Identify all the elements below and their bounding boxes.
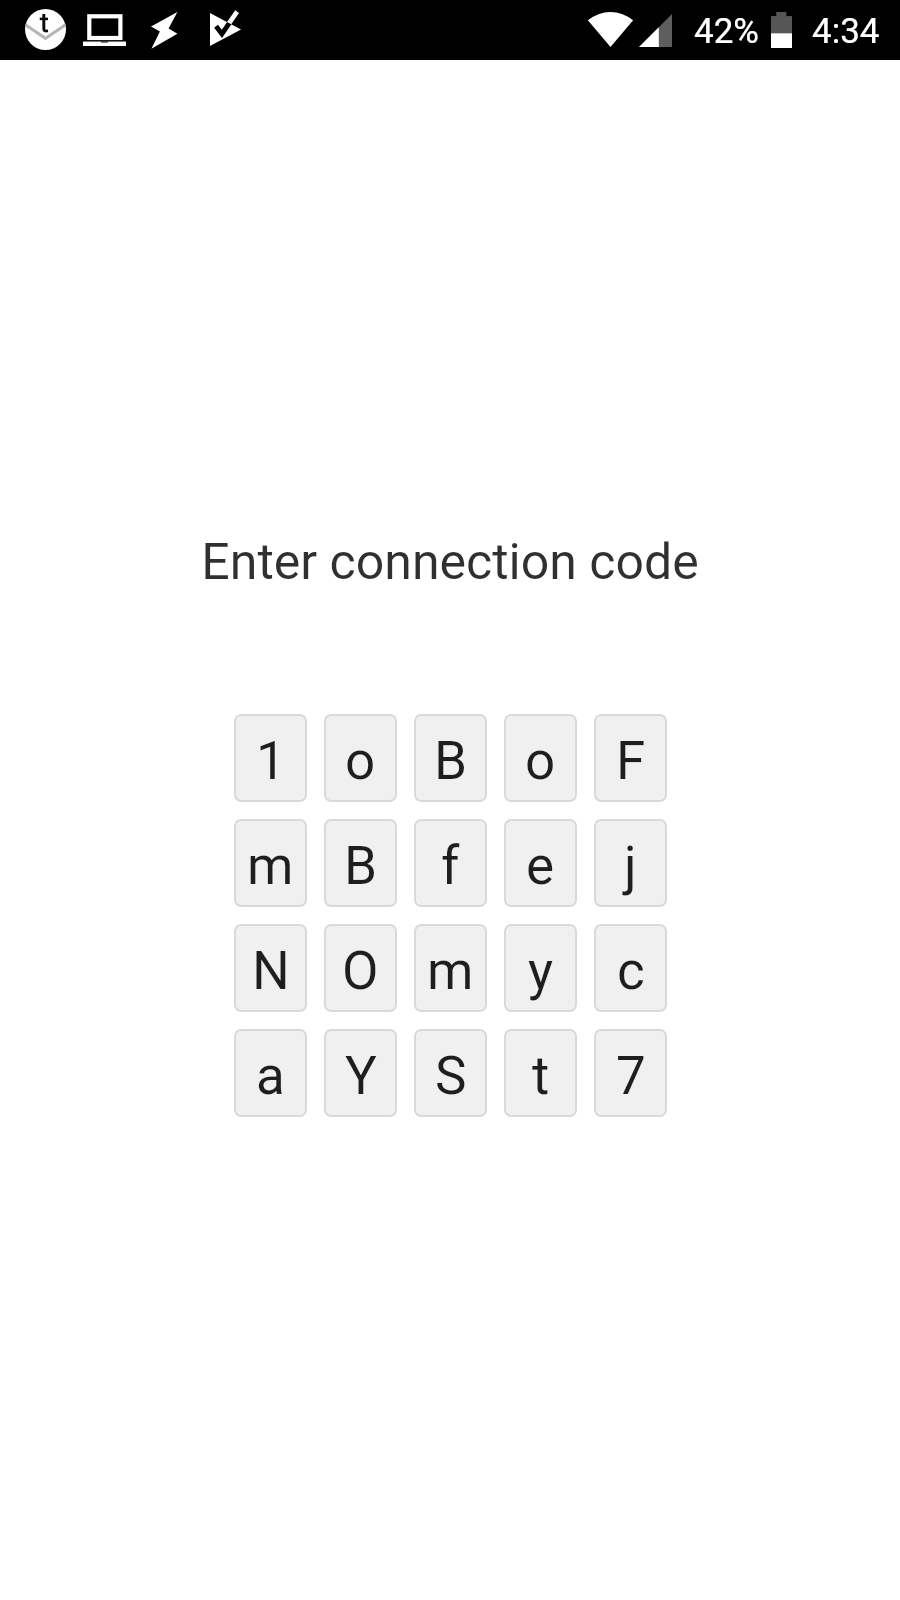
other: Play Store update <box>210 13 241 46</box>
other: Mobile signal <box>639 14 672 47</box>
staticText: e <box>526 835 555 897</box>
staticText: a <box>256 1045 285 1107</box>
button[interactable]: j <box>594 819 667 907</box>
button[interactable]: o <box>324 714 397 802</box>
button[interactable]: N <box>234 924 307 1012</box>
staticText: Y <box>345 1045 377 1107</box>
staticText: t <box>532 1045 550 1107</box>
staticText: j <box>624 835 637 897</box>
button[interactable]: S <box>414 1029 487 1117</box>
staticText: 7 <box>616 1045 646 1107</box>
other: Charging <box>150 11 178 50</box>
staticText: 1 <box>256 730 286 792</box>
button[interactable]: Y <box>324 1029 397 1117</box>
button[interactable]: 1 <box>234 714 307 802</box>
staticText: B <box>434 730 468 792</box>
button[interactable]: t <box>504 1029 577 1117</box>
button[interactable]: m <box>414 924 487 1012</box>
button[interactable]: B <box>414 714 487 802</box>
staticText: Enter connection code <box>201 533 699 592</box>
staticText: N <box>252 940 290 1002</box>
other: Cast to computer <box>83 14 126 46</box>
button[interactable]: a <box>234 1029 307 1117</box>
button[interactable]: O <box>324 924 397 1012</box>
button[interactable]: e <box>504 819 577 907</box>
staticText: o <box>525 730 556 792</box>
staticText: o <box>345 730 376 792</box>
staticText: 42% <box>694 11 759 52</box>
staticText: m <box>427 940 474 1002</box>
staticText: m <box>247 835 294 897</box>
staticText: F <box>616 730 646 792</box>
other: Tumblr notification <box>25 9 66 50</box>
button[interactable]: y <box>504 924 577 1012</box>
button[interactable]: m <box>234 819 307 907</box>
staticText: y <box>528 940 554 1002</box>
staticText: B <box>344 835 378 897</box>
button[interactable]: o <box>504 714 577 802</box>
button[interactable]: F <box>594 714 667 802</box>
other: Battery 42 percent <box>771 12 792 48</box>
staticText: f <box>441 835 460 897</box>
button[interactable]: c <box>594 924 667 1012</box>
button[interactable]: f <box>414 819 487 907</box>
staticText: S <box>435 1045 467 1107</box>
other: Wi-Fi <box>589 12 632 47</box>
staticText: t <box>40 8 49 38</box>
staticText: 4:34 <box>812 11 880 52</box>
staticText: O <box>342 940 379 1002</box>
button[interactable]: 7 <box>594 1029 667 1117</box>
button[interactable]: B <box>324 819 397 907</box>
staticText: c <box>617 940 645 1002</box>
